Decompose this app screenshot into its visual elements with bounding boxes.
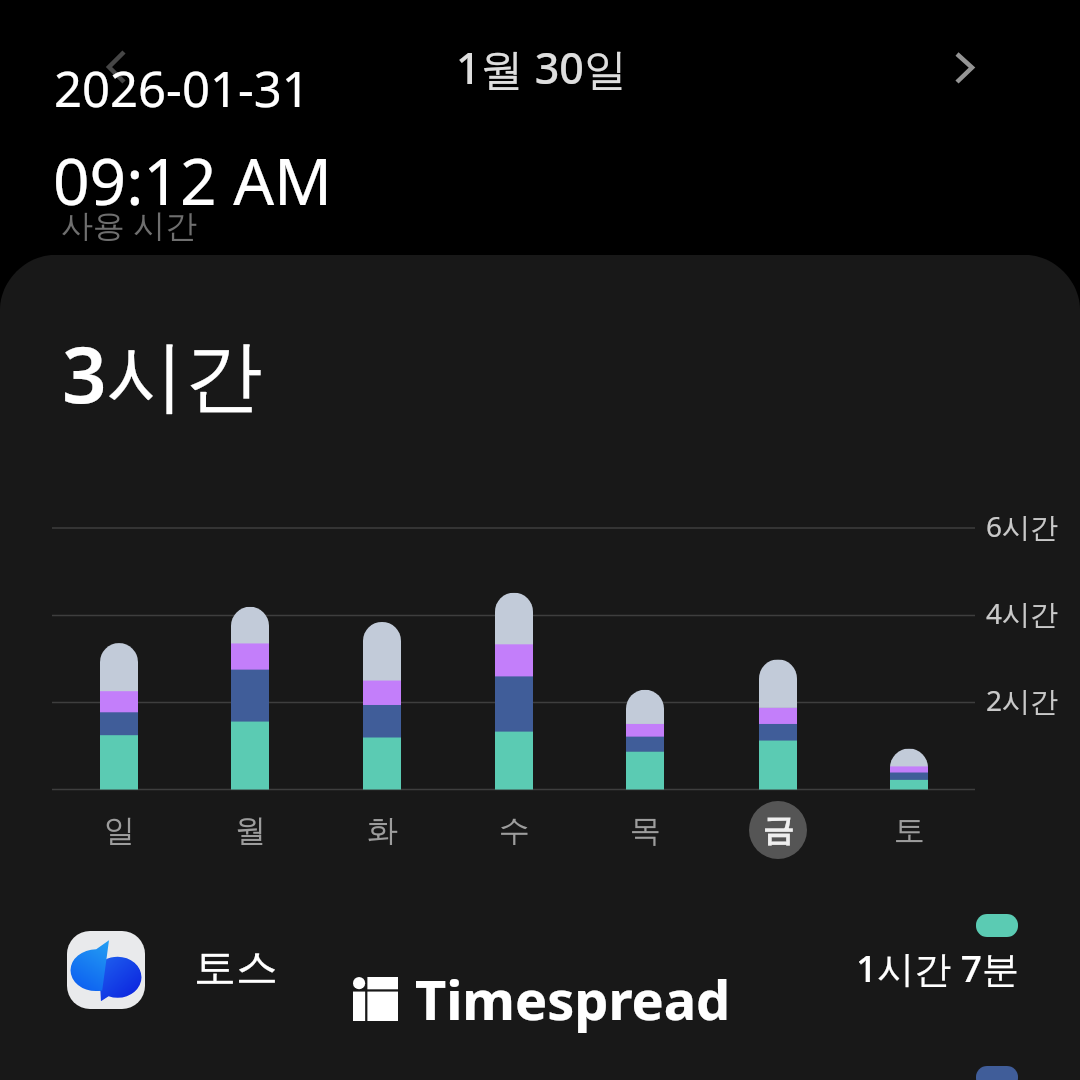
staticText: 토스 bbox=[194, 942, 278, 995]
staticText: Timespread bbox=[415, 962, 731, 1036]
button[interactable]: 금 bbox=[749, 801, 807, 859]
staticText: 6시간 bbox=[986, 507, 1059, 545]
staticText: 토 bbox=[894, 811, 925, 850]
button[interactable]: 토 bbox=[880, 801, 938, 859]
button[interactable]: 수 bbox=[485, 801, 543, 859]
button[interactable]: Previous day bbox=[86, 29, 146, 89]
staticText: 월 bbox=[235, 811, 266, 850]
button[interactable]: 목 bbox=[616, 801, 674, 859]
staticText: 사용 시간 bbox=[61, 203, 198, 247]
staticText: 3시간 bbox=[62, 320, 263, 427]
button[interactable] bbox=[0, 505, 1080, 825]
staticText: 일 bbox=[104, 811, 135, 850]
button[interactable]: 토스 bbox=[0, 914, 1080, 1049]
staticText: 1시간 7분 bbox=[856, 942, 1019, 993]
staticText: 2시간 bbox=[986, 681, 1059, 719]
button[interactable]: 일 bbox=[90, 801, 148, 859]
staticText: 4시간 bbox=[986, 594, 1059, 632]
button[interactable]: Next day bbox=[934, 37, 994, 97]
staticText: 1월 30일 bbox=[456, 38, 627, 97]
button[interactable]: 화 bbox=[353, 801, 411, 859]
staticText: 화 bbox=[367, 811, 398, 850]
button[interactable]: 월 bbox=[221, 801, 279, 859]
staticText: 2026-01-31 bbox=[54, 55, 310, 122]
staticText: 09:12 AM bbox=[53, 137, 333, 224]
button[interactable] bbox=[0, 1066, 1080, 1080]
staticText: 금 bbox=[763, 811, 794, 850]
staticText: 수 bbox=[499, 811, 530, 850]
staticText: 목 bbox=[630, 811, 661, 850]
